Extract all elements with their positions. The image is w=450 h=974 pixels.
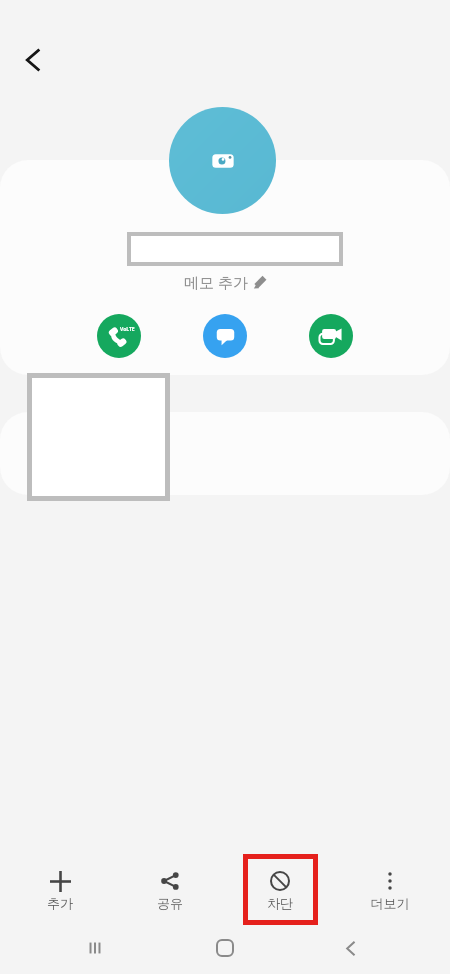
- button[interactable]: 공유: [124, 858, 216, 920]
- button[interactable]: Recents: [73, 926, 117, 970]
- button[interactable]: Home: [203, 926, 247, 970]
- staticText: 추가: [14, 895, 106, 911]
- button[interactable]: Back: [9, 36, 57, 84]
- button[interactable]: Message: [203, 314, 247, 358]
- staticText: 공유: [124, 895, 216, 911]
- button[interactable]: Video call: [309, 314, 353, 358]
- button[interactable]: Call: [97, 314, 141, 358]
- staticText: VoLTE: [120, 326, 135, 333]
- staticText: 더보기: [344, 895, 436, 911]
- button[interactable]: 더보기: [344, 858, 436, 920]
- button[interactable]: 메모 추가: [0, 270, 450, 294]
- button[interactable]: 차단: [234, 858, 326, 920]
- button[interactable]: Back: [328, 926, 372, 970]
- staticText: 차단: [234, 895, 326, 911]
- button[interactable]: 추가: [14, 858, 106, 920]
- staticText: 메모 추가: [184, 272, 248, 292]
- button[interactable]: Change photo: [169, 107, 276, 214]
